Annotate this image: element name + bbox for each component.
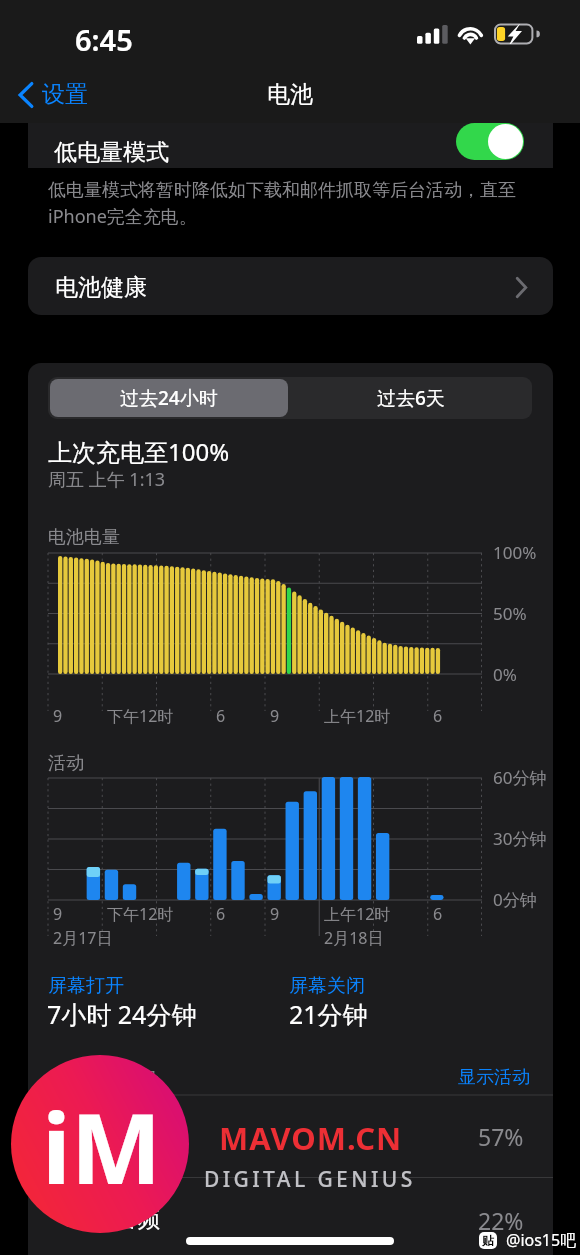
staticText: App 电池用量 <box>48 1066 159 1091</box>
staticText: 6 <box>216 903 226 925</box>
staticText: 上午12时 <box>324 903 391 925</box>
button[interactable]: Low Power Mode toggle <box>456 123 524 160</box>
staticText: 电池 <box>267 80 313 109</box>
staticText: 显示活动 <box>458 1066 530 1089</box>
staticText: 50% <box>493 602 527 625</box>
staticText: 6 <box>433 903 443 925</box>
staticText: 下午12时 <box>107 705 174 727</box>
staticText: 9 <box>53 705 63 727</box>
staticText: 30分钟 <box>493 827 547 850</box>
staticText: 低电量模式 <box>54 138 169 167</box>
staticText: 7小时 24分钟 <box>47 997 197 1031</box>
staticText: 屏幕打开 <box>48 974 124 998</box>
button[interactable]: Back to Settings <box>14 77 92 112</box>
staticText: 9 <box>53 903 63 925</box>
staticText: 6:45 <box>75 20 133 59</box>
staticText: @ios15吧 <box>506 1229 577 1251</box>
staticText: 21分钟 <box>289 997 368 1031</box>
button[interactable]: 过去6天 <box>292 379 530 417</box>
staticText: 过去24小时 <box>120 385 218 411</box>
staticText: 电池健康 <box>55 273 147 302</box>
staticText: iM <box>42 1081 162 1212</box>
staticText: 0分钟 <box>493 888 537 911</box>
staticText: DIGITAL GENIUS <box>204 1165 416 1194</box>
staticText: 电池电量 <box>48 526 120 549</box>
staticText: 屏幕关闭 <box>289 974 365 998</box>
staticText: 6 <box>433 705 443 727</box>
staticText: 22% <box>478 1205 524 1236</box>
button[interactable]: 低电量模式 <box>28 123 553 168</box>
button[interactable]: 过去24小时 <box>50 379 288 417</box>
staticText: 6 <box>216 705 226 727</box>
staticText: 上午12时 <box>324 705 391 727</box>
staticText: MAVOM.CN <box>219 1117 403 1159</box>
staticText: 活动 <box>48 752 84 775</box>
staticText: 100% <box>493 541 537 564</box>
staticText: 音频 <box>116 1206 160 1234</box>
staticText: 9 <box>270 903 280 925</box>
staticText: 60分钟 <box>493 766 547 789</box>
staticText: 上次充电至100% <box>48 435 230 468</box>
staticText: 2月18日 <box>324 927 384 949</box>
staticText: 2月17日 <box>53 927 113 949</box>
staticText: 贴 <box>482 1233 494 1248</box>
staticText: 过去6天 <box>377 385 445 411</box>
button[interactable]: 电池健康 <box>28 257 553 315</box>
staticText: 9 <box>270 705 280 727</box>
staticText: 下午12时 <box>107 903 174 925</box>
button[interactable]: 显示活动 <box>458 1066 530 1089</box>
staticText: 0% <box>493 663 517 686</box>
staticText: 57% <box>478 1121 524 1152</box>
staticText: 低电量模式将暂时降低如下载和邮件抓取等后台活动，直至 iPhone完全充电。 <box>48 179 516 228</box>
staticText: 设置 <box>42 80 88 109</box>
staticText: 周五 上午 1:13 <box>48 467 166 492</box>
